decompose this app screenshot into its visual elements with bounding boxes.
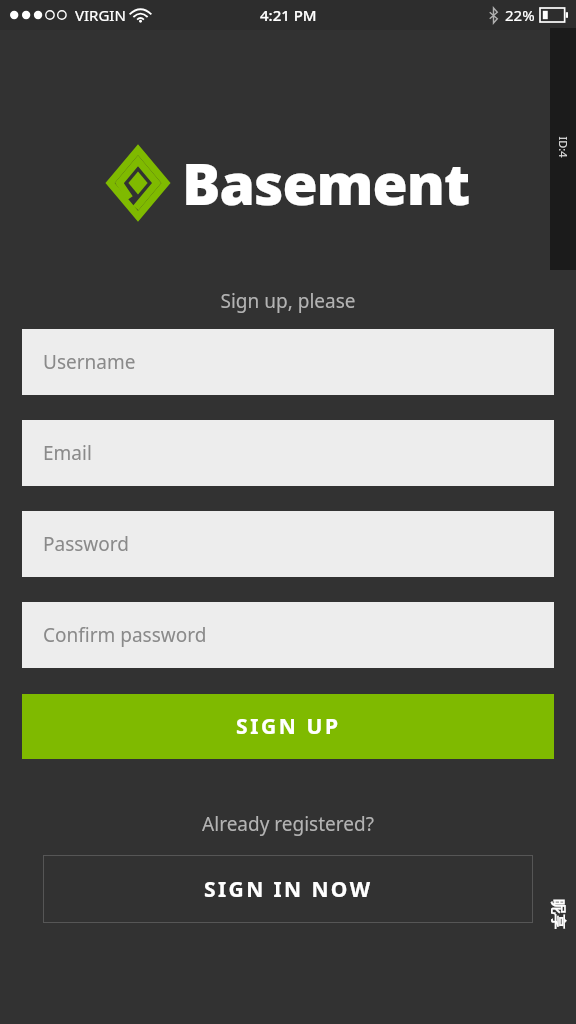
button[interactable]: Email	[22, 420, 554, 486]
staticText: 4:21 PM	[260, 5, 317, 25]
staticText: Confirm password	[43, 622, 207, 648]
button[interactable]: SIGN UP	[22, 694, 554, 759]
button[interactable]: Username	[22, 329, 554, 395]
button[interactable]: Password	[22, 511, 554, 577]
staticText: Password	[43, 531, 129, 557]
staticText: Email	[43, 440, 92, 466]
staticText: 22%	[505, 5, 535, 25]
staticText: Sign up, please	[0, 288, 576, 314]
staticText: Username	[43, 349, 136, 375]
staticText: ID:4662027 NO:20240204104733202108	[555, 136, 570, 162]
button[interactable]: Confirm password	[22, 602, 554, 668]
staticText: SIGN IN NOW	[204, 875, 373, 904]
staticText: SIGN UP	[236, 712, 341, 741]
staticText: Already registered?	[0, 811, 576, 837]
staticText: VIRGIN	[75, 5, 126, 25]
other: Stock photo watermark	[540, 812, 574, 1020]
other: Watermark identifier	[550, 28, 576, 270]
staticText: Basement	[182, 144, 470, 222]
staticText: 昵享网 www.nipic.cn	[547, 899, 566, 933]
button[interactable]: SIGN IN NOW	[43, 855, 533, 923]
